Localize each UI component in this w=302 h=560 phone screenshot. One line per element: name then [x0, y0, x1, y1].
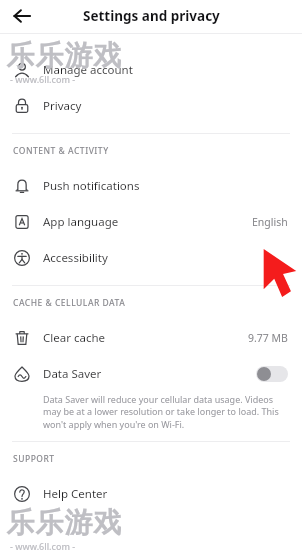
staticText: - www.6ll.com -	[10, 540, 76, 552]
staticText: Accessibility	[43, 250, 108, 266]
staticText: Clear cache	[43, 330, 105, 346]
button[interactable]: Help Center	[0, 476, 302, 512]
staticText: - www.6ll.com -	[10, 73, 76, 85]
staticText: Manage account	[43, 62, 133, 78]
staticText: Help Center	[43, 486, 108, 502]
staticText: Data Saver	[43, 366, 102, 382]
staticText: 乐乐游戏	[6, 505, 122, 540]
staticText: Settings and privacy	[83, 7, 220, 25]
button[interactable]: Privacy	[0, 88, 302, 124]
button[interactable]: Accessibility	[0, 240, 302, 276]
button[interactable]: App language	[0, 204, 302, 240]
staticText: CONTENT & ACTIVITY	[13, 145, 109, 157]
staticText: 9.77 MB	[248, 331, 288, 345]
staticText: English	[252, 215, 288, 229]
button[interactable]: Push notifications	[0, 168, 302, 204]
staticText: Push notifications	[43, 178, 140, 194]
button[interactable]: Data Saver	[0, 356, 302, 392]
button[interactable]: Manage account	[0, 52, 302, 88]
button[interactable]: Back	[6, 0, 38, 32]
staticText: Data Saver will reduce your cellular dat…	[43, 393, 286, 431]
staticText: 乐乐游戏	[6, 38, 122, 73]
staticText: CACHE & CELLULAR DATA	[13, 297, 126, 309]
staticText: Privacy	[43, 98, 82, 114]
button[interactable]: Data Saver toggle	[256, 366, 288, 382]
button[interactable]: Clear cache	[0, 320, 302, 356]
staticText: App language	[43, 214, 119, 230]
staticText: SUPPORT	[13, 453, 55, 465]
